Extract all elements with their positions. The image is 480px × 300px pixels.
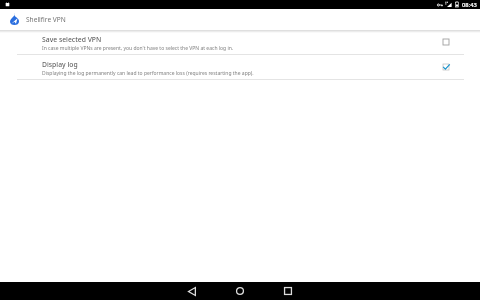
staticText: In case multiple VPNs are present, you d…	[42, 45, 234, 52]
staticText: Display log	[42, 60, 78, 69]
staticText: Displaying the log permanently can lead …	[42, 70, 254, 77]
button[interactable]: Save selected VPN	[0, 30, 480, 54]
button[interactable]: Toggle setting	[439, 60, 453, 74]
button[interactable]: Display log	[0, 55, 480, 79]
staticText: 08:43	[462, 1, 477, 9]
button[interactable]: Home	[216, 282, 264, 300]
button[interactable]: Back	[168, 282, 216, 300]
button[interactable]: Toggle setting	[439, 35, 453, 49]
staticText: Save selected VPN	[42, 35, 102, 44]
staticText: Shellfire VPN	[26, 15, 66, 24]
button[interactable]: Recent apps	[264, 282, 312, 300]
